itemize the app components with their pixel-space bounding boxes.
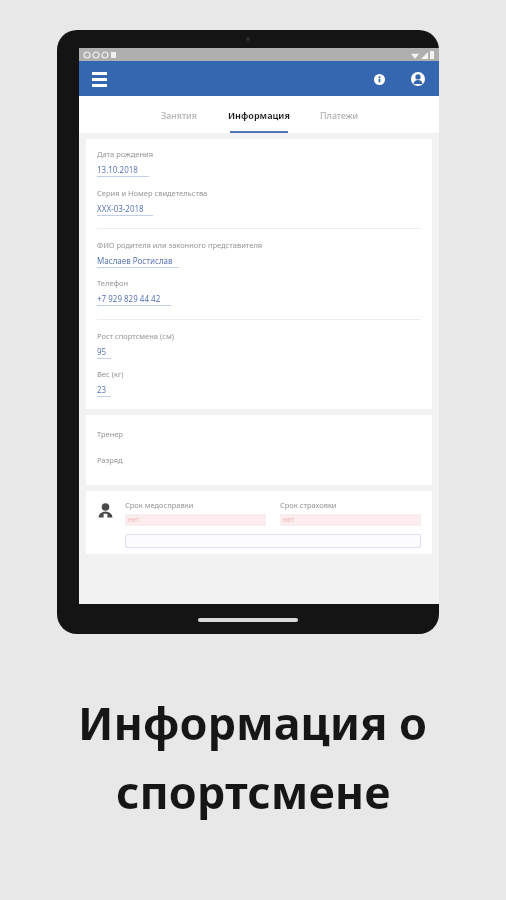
button[interactable]: Account xyxy=(407,68,429,90)
staticText: Срок медосправки xyxy=(125,500,194,510)
button[interactable] xyxy=(125,534,421,548)
staticText: +7 929 829 44 42 xyxy=(97,293,161,304)
staticText: Разряд xyxy=(97,455,123,465)
staticText: Телефон xyxy=(97,278,129,288)
staticText: Срок страховки xyxy=(280,500,337,510)
button[interactable]: Занятия xyxy=(143,96,215,133)
staticText: Тренер xyxy=(97,429,123,439)
button[interactable]: Платежи xyxy=(303,96,375,133)
staticText: нет xyxy=(128,515,140,525)
staticText: Занятия xyxy=(161,109,197,121)
staticText: Рост спортсмена (см) xyxy=(97,331,174,341)
button[interactable]: Info xyxy=(368,68,390,90)
staticText: Информация о xyxy=(78,692,428,753)
staticText: Вес (кг) xyxy=(97,369,124,379)
staticText: 23 xyxy=(97,384,107,395)
button[interactable]: Информация xyxy=(215,96,303,133)
button[interactable]: Menu xyxy=(87,67,111,91)
staticText: Дата рождения xyxy=(97,149,154,159)
staticText: 95 xyxy=(97,346,107,357)
staticText: Маслаев Ростислав xyxy=(97,255,173,266)
staticText: XXX-03-2018 xyxy=(97,203,144,214)
staticText: Серия и Номер свидетельства xyxy=(97,188,208,198)
staticText: нет xyxy=(283,515,295,525)
staticText: ФИО родителя или законного представителя xyxy=(97,240,263,250)
staticText: спортсмене xyxy=(116,761,391,822)
staticText: 13.10.2018 xyxy=(97,164,138,175)
staticText: Информация xyxy=(228,109,290,121)
staticText: Платежи xyxy=(320,109,359,121)
